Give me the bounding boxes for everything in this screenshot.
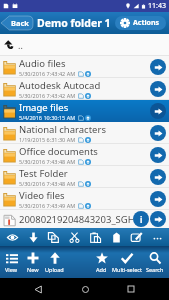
button[interactable]: View xyxy=(1,246,22,278)
button[interactable]: Open National characters xyxy=(150,125,166,141)
button[interactable]: Multi-select xyxy=(112,246,142,278)
button[interactable]: Copy xyxy=(44,228,62,246)
staticText: 5/30/2016 7:43:42 AM xyxy=(19,92,76,99)
button[interactable]: Open Office documents xyxy=(150,147,166,163)
staticText: Actions xyxy=(133,18,160,28)
button[interactable]: Open Image files xyxy=(150,103,166,119)
staticText: 5/30/2016 7:43:48 AM xyxy=(19,158,76,165)
staticText: 20080219204843203_SGH-I xyxy=(19,213,133,226)
staticText: Office documents xyxy=(19,145,98,158)
button[interactable]: 20080219204843203_SGH-I xyxy=(0,210,169,228)
button[interactable]: Info xyxy=(133,211,149,227)
staticText: i xyxy=(140,214,143,225)
button[interactable]: Actions xyxy=(115,16,166,30)
button[interactable]: Test Folder xyxy=(0,166,169,188)
staticText: 5/30/2016 7:43:42 AM xyxy=(19,70,76,77)
staticText: Audio files xyxy=(19,57,66,70)
button[interactable]: View xyxy=(3,228,21,246)
button[interactable]: New xyxy=(22,246,43,278)
button[interactable]: Office documents xyxy=(0,144,169,166)
staticText: Multi-select xyxy=(112,266,142,273)
button[interactable]: Back xyxy=(29,280,47,298)
button[interactable]: .. xyxy=(0,34,169,56)
staticText: Image files xyxy=(19,101,69,114)
staticText: .. xyxy=(18,39,23,51)
staticText: Autodesk Autocad xyxy=(19,79,101,92)
button[interactable]: More xyxy=(148,228,166,246)
button[interactable]: Open Test Folder xyxy=(150,169,166,185)
staticText: Search xyxy=(146,266,164,273)
staticText: 1/19/2015 6:31:30 AM xyxy=(19,136,76,143)
button[interactable]: Home xyxy=(76,280,94,298)
button[interactable]: Back xyxy=(1,16,33,30)
staticText: Video files xyxy=(19,189,65,202)
staticText: Add xyxy=(96,266,107,273)
button[interactable]: Video files xyxy=(0,188,169,210)
button[interactable]: National characters xyxy=(0,122,169,144)
button[interactable]: Image files xyxy=(0,100,169,122)
staticText: 11:43 xyxy=(148,1,166,11)
button[interactable]: Upload xyxy=(43,246,66,278)
button[interactable]: Autodesk Autocad xyxy=(0,78,169,100)
staticText: View xyxy=(5,266,18,273)
button[interactable]: Cut xyxy=(65,228,83,246)
button[interactable]: Download xyxy=(24,228,42,246)
staticText: Demo folder 1 xyxy=(37,16,111,30)
staticText: National characters xyxy=(19,123,106,136)
button[interactable]: Paste xyxy=(86,228,104,246)
button[interactable]: Open Video files xyxy=(150,191,166,207)
staticText: Back xyxy=(11,18,29,28)
button[interactable]: Delete xyxy=(107,228,125,246)
button[interactable]: Audio files xyxy=(0,56,169,78)
button[interactable]: Search xyxy=(142,246,168,278)
staticText: 5/30/2016 7:43:49 AM xyxy=(19,202,76,209)
button[interactable]: Rename xyxy=(127,228,145,246)
staticText: 5/30/2016 7:43:48 AM xyxy=(19,180,76,187)
staticText: 5/4/2016 10:30:15 AM xyxy=(19,114,76,121)
staticText: Test Folder xyxy=(19,167,68,180)
staticText: Upload xyxy=(45,266,64,273)
staticText: New xyxy=(27,266,39,273)
button[interactable]: Open Autodesk Autocad xyxy=(150,81,166,97)
button[interactable]: Recents xyxy=(122,280,140,298)
button[interactable]: Open 20080219204843203_SGH-I xyxy=(150,211,166,227)
button[interactable]: Open Audio files xyxy=(150,59,166,75)
button[interactable]: Add xyxy=(91,246,112,278)
